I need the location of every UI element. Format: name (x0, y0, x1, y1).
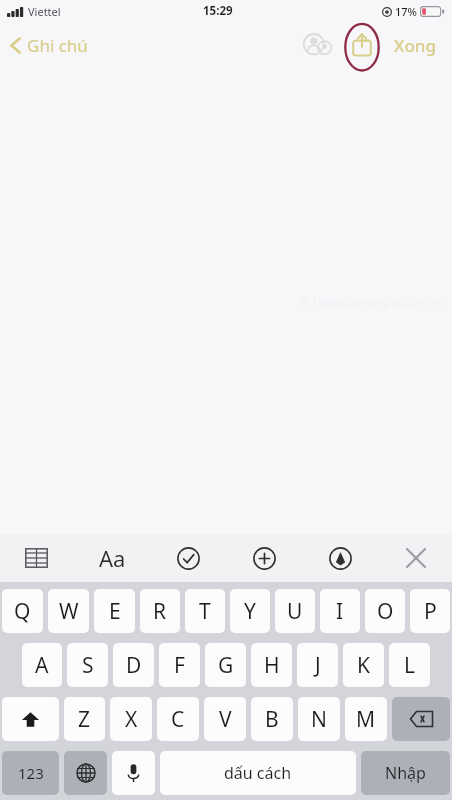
button[interactable]: Aa (90, 538, 134, 578)
staticText: dấu cách (224, 762, 292, 784)
button[interactable]: Shift (2, 697, 59, 741)
button[interactable]: Close keyboard (394, 538, 438, 578)
button[interactable]: X (110, 697, 152, 741)
staticText: Q (14, 597, 31, 626)
button[interactable]: Dictation (112, 751, 155, 795)
button[interactable]: P (410, 589, 450, 633)
button[interactable]: C (157, 697, 199, 741)
button[interactable]: V (204, 697, 246, 741)
staticText: U (287, 597, 303, 626)
staticText: X (125, 705, 138, 734)
staticText: O (377, 597, 394, 626)
button[interactable]: K (343, 643, 384, 687)
button[interactable]: S (67, 643, 108, 687)
staticText: A (35, 651, 49, 680)
button[interactable]: F (159, 643, 200, 687)
button[interactable]: Checklist (166, 538, 210, 578)
button[interactable]: O (365, 589, 405, 633)
button[interactable]: Y (230, 589, 270, 633)
staticText: Viettel (28, 4, 61, 19)
staticText: 15:29 (203, 3, 233, 19)
staticText: S (82, 651, 94, 680)
button[interactable]: R (140, 589, 180, 633)
staticText: C (171, 705, 185, 734)
button[interactable]: E (94, 589, 135, 633)
button[interactable]: Ghi chú (0, 28, 100, 63)
button[interactable]: Table (14, 538, 58, 578)
staticText: G (218, 651, 234, 680)
button[interactable]: A (22, 643, 62, 687)
staticText: T (199, 597, 211, 626)
staticText: 17% (395, 4, 417, 19)
button[interactable]: U (275, 589, 315, 633)
button[interactable]: I (320, 589, 360, 633)
staticText: N (311, 705, 327, 734)
button[interactable]: Share (340, 23, 384, 67)
staticText: H (264, 651, 280, 680)
button[interactable]: Q (2, 589, 43, 633)
button[interactable]: L (389, 643, 430, 687)
staticText: M (356, 705, 376, 734)
button[interactable]: Backspace (392, 697, 450, 741)
staticText: Y (244, 597, 256, 626)
staticText: P (424, 597, 437, 626)
button[interactable]: W (48, 589, 89, 633)
button[interactable]: Xong (384, 26, 446, 65)
button[interactable]: Z (64, 697, 105, 741)
staticText: Nhập (385, 762, 426, 784)
button[interactable]: J (297, 643, 338, 687)
button[interactable]: Add (242, 538, 286, 578)
button[interactable]: Add people (296, 23, 340, 67)
staticText: B (265, 705, 279, 734)
button[interactable]: B (251, 697, 293, 741)
button[interactable]: Markup (318, 538, 362, 578)
staticText: L (404, 651, 416, 680)
button[interactable]: T (185, 589, 225, 633)
staticText: K (357, 651, 370, 680)
button[interactable]: Change keyboard (64, 751, 107, 795)
staticText: F (174, 651, 185, 680)
staticText: J (315, 651, 321, 680)
staticText: Z (78, 705, 91, 734)
staticText: I (336, 597, 344, 626)
button[interactable]: M (345, 697, 387, 741)
staticText: R (153, 597, 167, 626)
staticText: D (126, 651, 142, 680)
staticText: W (59, 597, 79, 626)
staticText: Xong (394, 34, 436, 57)
button[interactable]: dấu cách (160, 751, 356, 795)
staticText: 123 (18, 763, 44, 783)
staticText: V (219, 705, 232, 734)
staticText: Aa (99, 543, 126, 573)
button[interactable]: H (251, 643, 292, 687)
button[interactable]: 123 (2, 751, 59, 795)
button[interactable]: G (205, 643, 246, 687)
staticText: E (109, 597, 121, 626)
button[interactable]: D (113, 643, 154, 687)
staticText: Ghi chú (27, 34, 88, 57)
button[interactable]: Nhập (361, 751, 450, 795)
button[interactable]: N (298, 697, 340, 741)
